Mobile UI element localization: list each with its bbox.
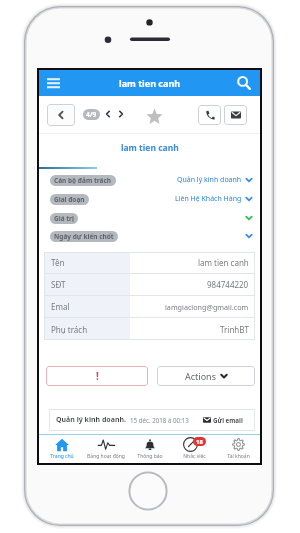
button[interactable]: Favorite bbox=[146, 108, 163, 125]
staticText: Tên bbox=[51, 257, 65, 268]
staticText: Quản lý kinh doanh bbox=[177, 175, 242, 185]
button[interactable]: Tài khoản bbox=[216, 435, 260, 462]
staticText: 4/9 bbox=[86, 110, 97, 119]
button[interactable]: Ngày dự kiến chốt bbox=[39, 228, 260, 244]
staticText: Giai đoạn bbox=[54, 195, 85, 204]
button[interactable]: Actions bbox=[157, 366, 255, 386]
staticText: Cán bộ đảm trách bbox=[54, 176, 112, 185]
button[interactable]: Call bbox=[198, 105, 221, 125]
button[interactable]: Email bbox=[224, 105, 247, 125]
staticText: 984744220 bbox=[207, 279, 249, 290]
staticText: lam tien canh bbox=[198, 257, 249, 268]
staticText: TrinhBT bbox=[220, 324, 249, 335]
button[interactable]: Giai đoạn bbox=[39, 191, 260, 207]
staticText: lam tien canh bbox=[119, 77, 181, 89]
staticText: 15 déc. 2018 à 00:13 bbox=[130, 416, 189, 424]
staticText: Bảng hoạt động bbox=[87, 453, 125, 460]
staticText: Quản lý kinh doanh. bbox=[56, 415, 126, 425]
staticText: Phụ trách bbox=[51, 324, 88, 335]
staticText: Gửi email bbox=[213, 416, 243, 424]
button[interactable]: Thông báo bbox=[128, 435, 172, 462]
button[interactable]: Gửi email bbox=[203, 416, 243, 424]
staticText: Nhắc việc bbox=[183, 453, 206, 460]
button[interactable]: Bảng hoạt động bbox=[84, 435, 128, 462]
button[interactable]: Cán bộ đảm trách bbox=[39, 172, 260, 188]
staticText: Tài khoản bbox=[227, 453, 250, 460]
staticText: Thông báo bbox=[137, 453, 163, 460]
staticText: Liên Hệ Khách Hàng bbox=[175, 194, 242, 204]
staticText: Actions bbox=[185, 370, 216, 382]
staticText: lamgiaclong@gmail.com bbox=[165, 302, 249, 312]
button[interactable]: Issue bbox=[46, 366, 148, 386]
button[interactable]: Record 4 of 9 bbox=[83, 109, 100, 120]
staticText: Giá trị bbox=[54, 214, 74, 223]
staticText: Ngày dự kiến chốt bbox=[54, 232, 114, 241]
staticText: ! bbox=[96, 369, 99, 383]
button[interactable]: Next record bbox=[116, 109, 126, 119]
button[interactable]: Search bbox=[234, 73, 254, 93]
button[interactable]: Trang chủ bbox=[39, 435, 84, 462]
button[interactable]: Previous record bbox=[103, 109, 113, 119]
button[interactable]: Menu bbox=[42, 72, 64, 94]
button[interactable]: Back bbox=[47, 104, 75, 126]
staticText: SĐT bbox=[51, 279, 66, 290]
button[interactable]: Giá trị bbox=[39, 210, 260, 226]
staticText: lam tien canh bbox=[121, 142, 179, 154]
staticText: 18 bbox=[196, 438, 203, 446]
button[interactable]: 18 bbox=[172, 435, 216, 462]
staticText: Emal bbox=[51, 301, 70, 312]
staticText: Trang chủ bbox=[50, 453, 74, 460]
